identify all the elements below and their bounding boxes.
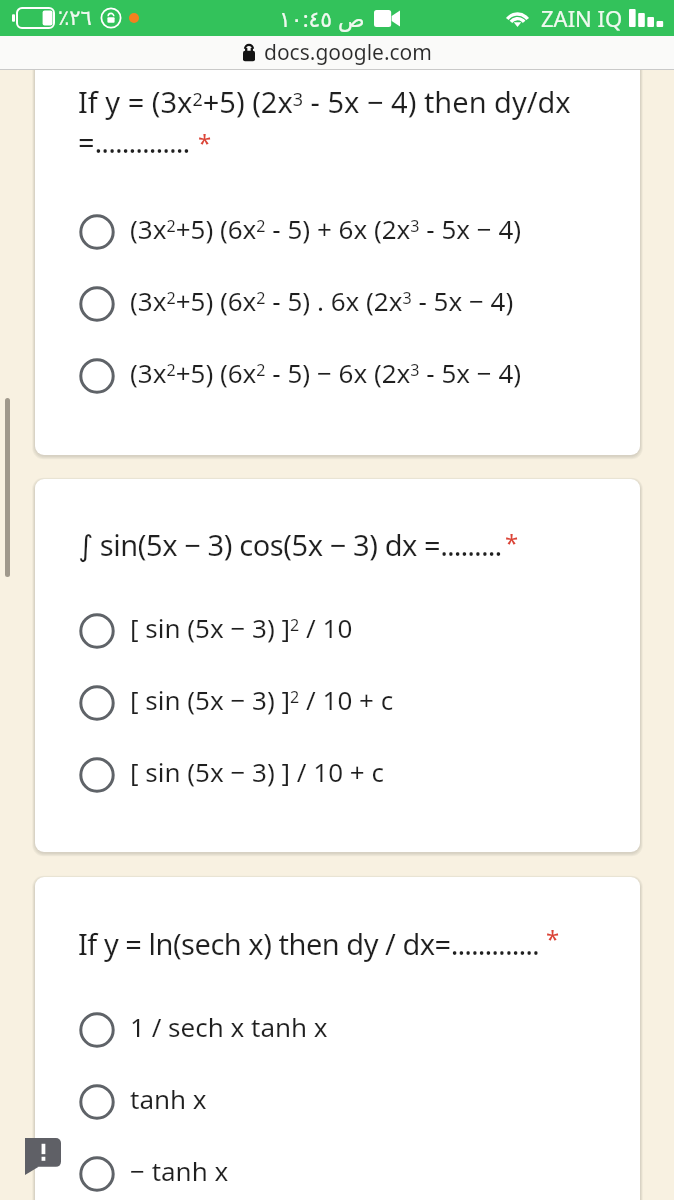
- staticText: If y = ln(sech x) then dy / dx=.........…: [78, 924, 539, 963]
- button[interactable]: [35, 1078, 640, 1126]
- staticText: *: [198, 126, 212, 159]
- staticText: (3x2+5) (6x2 - 5) . 6x (2x3 - 5x − 4): [130, 283, 514, 318]
- button[interactable]: [35, 1006, 640, 1054]
- button[interactable]: [35, 208, 640, 256]
- staticText: [ sin (5x − 3) ] / 10 + c: [130, 754, 384, 789]
- staticText: If y = (3x2+5) (2x3 - 5x − 4) then dy/dx: [78, 82, 571, 121]
- staticText: *: [546, 922, 560, 955]
- staticText: docs.google.com: [264, 38, 432, 67]
- staticText: ص ١٠:٤٥: [279, 3, 365, 33]
- button[interactable]: [35, 479, 640, 852]
- staticText: (3x2+5) (6x2 - 5) + 6x (2x3 - 5x − 4): [130, 211, 522, 246]
- button[interactable]: [35, 1150, 640, 1198]
- button[interactable]: [35, 280, 640, 328]
- staticText: ٪٢٦: [58, 6, 92, 30]
- button[interactable]: Notification: [25, 1138, 61, 1175]
- staticText: *: [505, 526, 519, 559]
- staticText: ZAIN IQ: [541, 3, 623, 33]
- staticText: (3x2+5) (6x2 - 5) − 6x (2x3 - 5x − 4): [130, 355, 522, 390]
- staticText: [ sin (5x − 3) ]2 / 10 + c: [130, 682, 394, 717]
- staticText: =..............: [78, 122, 190, 161]
- button[interactable]: docs.google.com: [0, 36, 674, 69]
- button[interactable]: [35, 679, 640, 727]
- button[interactable]: [35, 877, 640, 1200]
- button[interactable]: [35, 607, 640, 655]
- staticText: [ sin (5x − 3) ]2 / 10: [130, 610, 353, 645]
- staticText: − tanh x: [130, 1153, 229, 1188]
- button[interactable]: [35, 40, 640, 455]
- staticText: ∫ sin(5x − 3) cos(5x − 3) dx =.........: [78, 525, 502, 564]
- staticText: 1 / sech x tanh x: [130, 1009, 328, 1044]
- button[interactable]: [35, 751, 640, 799]
- button[interactable]: [35, 352, 640, 400]
- staticText: tanh x: [130, 1081, 207, 1116]
